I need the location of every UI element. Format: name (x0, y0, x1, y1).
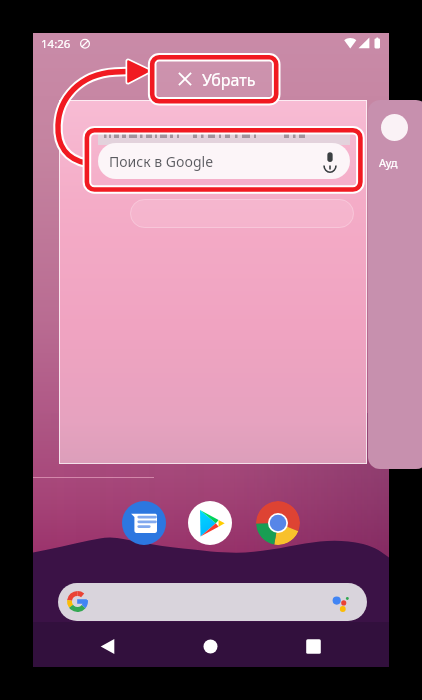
staticText: Ауд (379, 155, 398, 170)
button[interactable]: Back (91, 630, 124, 663)
button[interactable]: Ауд (368, 100, 422, 469)
staticText: Поиск в Google (109, 152, 214, 171)
button[interactable] (59, 100, 367, 464)
staticText: Убрать (202, 69, 256, 91)
button[interactable]: Google (58, 583, 367, 621)
other: Voice search (324, 152, 336, 170)
other: Auto rotate locked (80, 39, 90, 49)
button[interactable]: Убрать (156, 61, 272, 97)
button[interactable]: Chrome (256, 501, 300, 545)
other: Google Assistant (331, 593, 350, 612)
other: Google (67, 591, 88, 612)
button[interactable]: Messages (122, 501, 166, 545)
button[interactable]: Play Store (188, 501, 232, 545)
button[interactable]: Home (194, 630, 227, 663)
button[interactable]: Поиск в Google (98, 143, 350, 179)
staticText: 14:26 (41, 36, 71, 52)
button[interactable]: Recent apps (297, 630, 330, 663)
